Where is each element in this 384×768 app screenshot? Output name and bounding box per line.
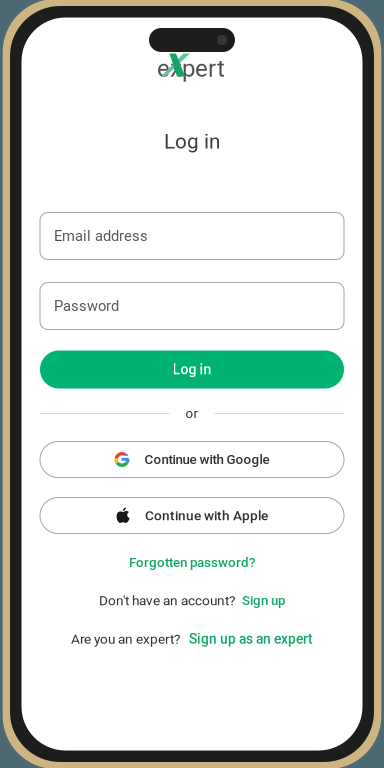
staticText: Sign up <box>242 593 285 608</box>
button[interactable]: Continue with Google <box>40 441 344 477</box>
staticText: or <box>185 406 198 421</box>
staticText: Password <box>54 297 119 315</box>
staticText: Forgotten password? <box>129 555 255 570</box>
staticText: Continue with Google <box>144 452 269 467</box>
button[interactable]: Email address <box>40 212 344 259</box>
button[interactable]: Password <box>40 282 344 329</box>
staticText: Log in <box>172 361 211 378</box>
staticText: Log in <box>164 129 220 154</box>
button[interactable]: Sign up as an expert <box>189 631 313 647</box>
staticText: Don't have an account? <box>99 592 235 608</box>
staticText: expert <box>157 54 225 83</box>
button[interactable]: Sign up <box>242 593 285 608</box>
staticText: Continue with Apple <box>145 507 268 523</box>
button[interactable]: Log in <box>40 350 344 388</box>
staticText: Are you an expert? <box>71 631 180 647</box>
staticText: Sign up as an expert <box>189 631 313 647</box>
button[interactable]: Continue with Apple <box>40 497 344 533</box>
staticText: Email address <box>54 227 148 245</box>
button[interactable]: Forgotten password? <box>129 552 255 572</box>
